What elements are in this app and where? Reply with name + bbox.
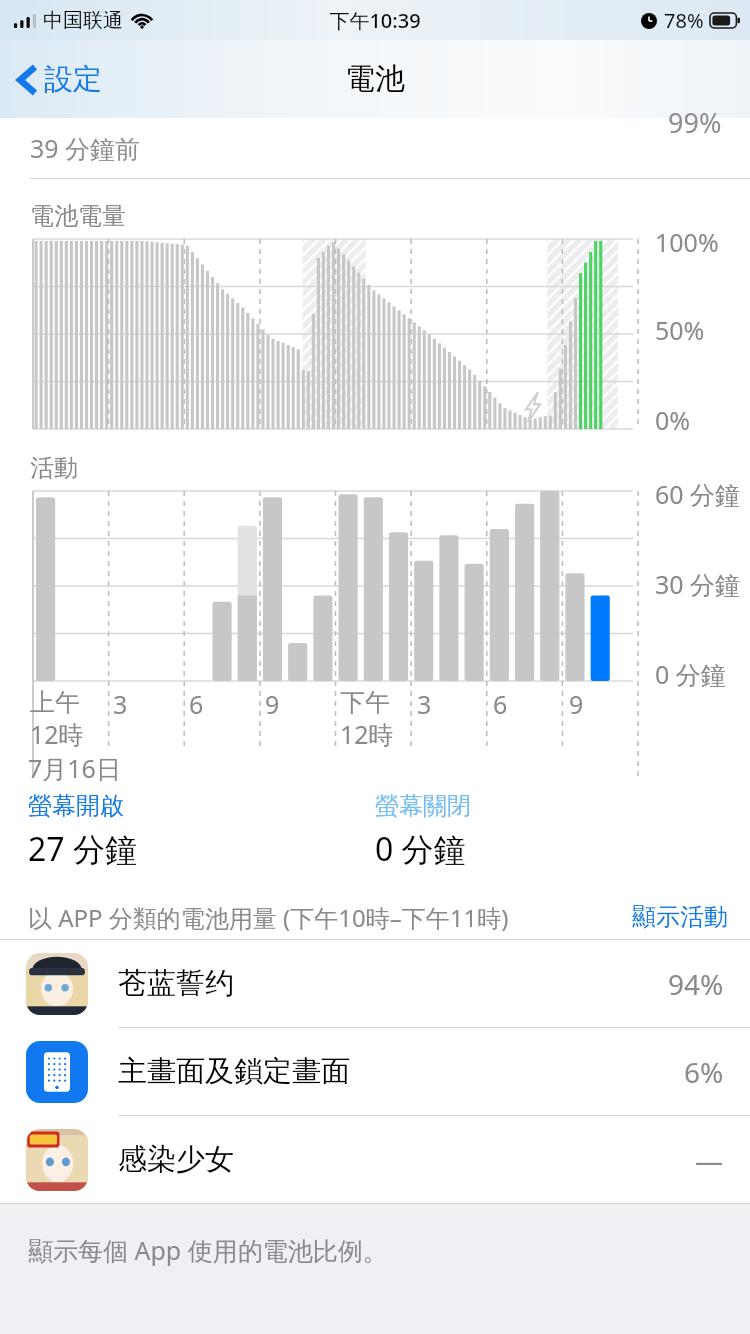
- staticText: 電池電量: [30, 201, 126, 231]
- staticText: 設定: [44, 61, 102, 98]
- staticText: 39 分鐘前: [30, 131, 141, 165]
- staticText: 顯示每個 App 使用的電池比例。: [28, 1233, 388, 1267]
- staticText: 中国联通: [43, 8, 123, 33]
- staticText: —: [695, 1141, 724, 1179]
- staticText: 9: [569, 687, 584, 721]
- staticText: 12時: [340, 717, 394, 751]
- button[interactable]: 感染少女: [0, 1116, 750, 1203]
- staticText: 9: [265, 687, 280, 721]
- staticText: 上午: [30, 687, 80, 718]
- staticText: 94%: [668, 965, 724, 1003]
- staticText: 60 分鐘: [655, 477, 741, 511]
- staticText: 30 分鐘: [655, 567, 741, 601]
- button[interactable]: 苍蓝誓约: [0, 940, 750, 1027]
- button[interactable]: 主畫面及鎖定畫面: [0, 1028, 750, 1115]
- staticText: 3: [113, 687, 128, 721]
- staticText: 50%: [655, 313, 705, 347]
- staticText: 0 分鐘: [375, 827, 466, 871]
- staticText: 活動: [30, 453, 78, 483]
- staticText: 電池: [345, 60, 405, 98]
- staticText: 7月16日: [28, 751, 121, 785]
- staticText: 12時: [30, 717, 84, 751]
- staticText: 螢幕開啟: [28, 791, 124, 821]
- staticText: 6%: [684, 1053, 724, 1091]
- staticText: 主畫面及鎖定畫面: [118, 1053, 350, 1090]
- staticText: 6: [493, 687, 508, 721]
- staticText: 78%: [664, 7, 704, 34]
- staticText: 下午: [340, 687, 390, 718]
- staticText: 苍蓝誓约: [118, 965, 234, 1002]
- staticText: 以 APP 分類的電池用量 (下午10時–下午11時): [28, 901, 509, 934]
- staticText: 0%: [655, 403, 691, 437]
- staticText: 顯示活動: [632, 902, 728, 932]
- staticText: 0 分鐘: [655, 657, 726, 691]
- staticText: 3: [417, 687, 432, 721]
- button[interactable]: 設定: [10, 55, 110, 104]
- staticText: 27 分鐘: [28, 827, 137, 871]
- staticText: 99%: [668, 104, 722, 141]
- staticText: 100%: [655, 225, 719, 259]
- staticText: 螢幕關閉: [375, 791, 471, 821]
- button[interactable]: 顯示活動: [610, 896, 750, 938]
- staticText: 下午10:39: [329, 7, 421, 34]
- staticText: 6: [189, 687, 204, 721]
- staticText: 感染少女: [118, 1141, 234, 1178]
